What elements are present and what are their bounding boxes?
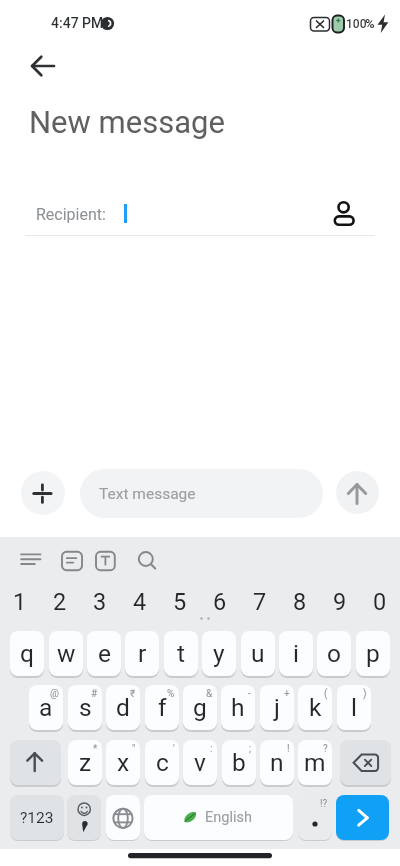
staticText: :: [210, 743, 213, 755]
button[interactable]: 2: [40, 588, 80, 616]
button[interactable]: [340, 740, 391, 785]
staticText: Text message: [99, 485, 196, 503]
staticText: English: [205, 809, 252, 826]
staticText: 2: [53, 588, 67, 616]
staticText: 1: [13, 588, 27, 616]
staticText: *: [93, 743, 98, 755]
staticText: 9: [333, 588, 347, 616]
button[interactable]: d: [106, 685, 140, 730]
button[interactable]: [144, 795, 293, 840]
button[interactable]: w: [49, 631, 83, 676]
staticText: 100: [346, 17, 367, 31]
staticText: z: [79, 748, 92, 777]
button[interactable]: u: [241, 631, 275, 676]
button[interactable]: b: [222, 740, 256, 785]
staticText: ?: [323, 743, 328, 755]
staticText: 5: [173, 588, 187, 616]
button[interactable]: 0: [360, 588, 400, 616]
staticText: Recipient:: [36, 205, 106, 224]
button[interactable]: k: [298, 685, 332, 730]
button[interactable]: g: [183, 685, 217, 730]
staticText: b: [232, 748, 246, 777]
staticText: ': [173, 743, 175, 755]
button[interactable]: z: [68, 740, 102, 785]
button[interactable]: Text message: [80, 469, 323, 518]
staticText: q: [20, 639, 34, 668]
staticText: #: [91, 688, 98, 700]
button[interactable]: r: [125, 631, 159, 676]
button[interactable]: x: [106, 740, 140, 785]
staticText: f: [158, 693, 167, 722]
button[interactable]: [10, 740, 61, 785]
button[interactable]: j: [260, 685, 294, 730]
staticText: ₹: [130, 688, 136, 700]
button[interactable]: s: [68, 685, 102, 730]
staticText: (: [324, 688, 328, 700]
staticText: New message: [29, 104, 225, 140]
button[interactable]: a: [29, 685, 63, 730]
staticText: !?: [320, 798, 328, 810]
button[interactable]: f: [145, 685, 179, 730]
button[interactable]: 9: [320, 588, 360, 616]
staticText: ;: [249, 743, 252, 755]
button[interactable]: p: [356, 631, 390, 676]
staticText: m: [304, 748, 326, 777]
button[interactable]: [336, 471, 379, 514]
button[interactable]: [336, 795, 389, 840]
staticText: e: [98, 639, 111, 668]
button[interactable]: c: [145, 740, 179, 785]
button[interactable]: ?123: [10, 795, 64, 840]
staticText: -: [248, 688, 251, 700]
button[interactable]: [67, 795, 101, 840]
staticText: r: [138, 639, 147, 668]
staticText: y: [213, 639, 225, 668]
staticText: %: [167, 688, 175, 700]
button[interactable]: h: [221, 685, 255, 730]
button[interactable]: 1: [0, 588, 40, 616]
staticText: u: [251, 639, 265, 668]
staticText: %: [365, 16, 375, 31]
staticText: &: [206, 688, 213, 700]
staticText: 4: [133, 588, 147, 616]
staticText: 7: [253, 588, 267, 616]
button[interactable]: e: [87, 631, 121, 676]
button[interactable]: [106, 795, 140, 840]
button[interactable]: [325, 193, 365, 233]
staticText: ": [132, 743, 136, 755]
staticText: 6: [213, 588, 227, 616]
button[interactable]: n: [260, 740, 294, 785]
button[interactable]: !?: [298, 795, 332, 840]
button[interactable]: 6: [200, 588, 240, 616]
staticText: d: [116, 693, 130, 722]
staticText: a: [39, 693, 53, 722]
button[interactable]: y: [202, 631, 236, 676]
button[interactable]: 8: [280, 588, 320, 616]
button[interactable]: [21, 471, 65, 515]
staticText: n: [270, 748, 284, 777]
staticText: !: [287, 743, 290, 755]
button[interactable]: v: [183, 740, 217, 785]
button[interactable]: l: [337, 685, 371, 730]
staticText: i: [293, 639, 299, 668]
staticText: t: [177, 639, 186, 668]
staticText: h: [231, 693, 245, 722]
button[interactable]: m: [298, 740, 332, 785]
staticText: ): [363, 688, 367, 700]
staticText: x: [117, 748, 130, 777]
staticText: 3: [93, 588, 107, 616]
staticText: o: [327, 639, 341, 668]
button[interactable]: 4: [120, 588, 160, 616]
staticText: v: [194, 748, 206, 777]
button[interactable]: o: [317, 631, 351, 676]
staticText: 8: [293, 588, 307, 616]
staticText: g: [193, 693, 207, 722]
button[interactable]: i: [279, 631, 313, 676]
staticText: p: [366, 639, 380, 668]
button[interactable]: t: [164, 631, 198, 676]
staticText: 0: [373, 588, 387, 616]
button[interactable]: 3: [80, 588, 120, 616]
button[interactable]: 7: [240, 588, 280, 616]
button[interactable]: 5: [160, 588, 200, 616]
staticText: c: [156, 748, 169, 777]
button[interactable]: q: [10, 631, 44, 676]
